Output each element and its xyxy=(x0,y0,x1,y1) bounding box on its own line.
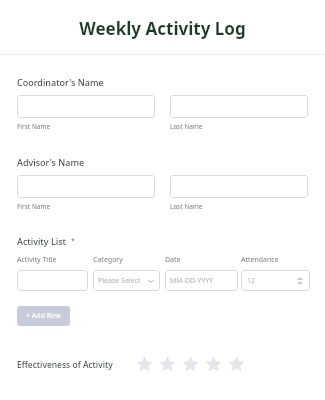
button[interactable]: Rate 4 stars xyxy=(202,353,225,376)
staticText: First Name xyxy=(17,202,155,211)
staticText: 12 xyxy=(247,276,256,286)
button[interactable]: Please Select xyxy=(93,270,160,291)
button[interactable]: Rate 5 stars xyxy=(225,353,248,376)
button[interactable] xyxy=(170,175,308,198)
staticText: + Add Row xyxy=(26,311,61,321)
staticText: MM-DD-YYYY xyxy=(170,276,214,286)
staticText: Coordinator's Name xyxy=(17,76,104,88)
button[interactable]: Rate 3 stars xyxy=(179,353,202,376)
staticText: First Name xyxy=(17,122,155,131)
button[interactable]: MM-DD-YYYY xyxy=(165,270,238,291)
staticText: Please Select xyxy=(98,276,141,286)
staticText: Last Name xyxy=(170,202,308,211)
button[interactable]: + Add Row xyxy=(17,306,70,326)
staticText: Last Name xyxy=(170,122,308,131)
button[interactable]: 12 xyxy=(241,270,310,291)
button[interactable] xyxy=(17,270,88,291)
button[interactable] xyxy=(170,95,308,118)
staticText: Category xyxy=(93,255,165,265)
button[interactable]: Rate 2 stars xyxy=(156,353,179,376)
button[interactable] xyxy=(17,175,155,198)
staticText: Date xyxy=(165,255,241,265)
staticText: * xyxy=(71,236,75,246)
staticText: Attendance xyxy=(241,255,279,265)
staticText: Advisor's Name xyxy=(17,156,85,168)
staticText: Activity List xyxy=(17,235,66,247)
staticText: Effectiveness of Activity xyxy=(17,359,113,371)
button[interactable]: Rate 1 stars xyxy=(133,353,156,376)
button[interactable] xyxy=(17,95,155,118)
staticText: Weekly Activity Log xyxy=(0,17,325,40)
staticText: Activity Title xyxy=(17,255,93,265)
